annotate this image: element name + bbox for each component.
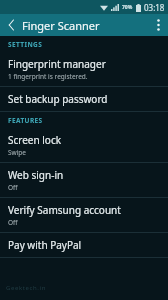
button[interactable]: Verify Samsung account [0,198,168,232]
button[interactable]: More options [148,14,168,36]
staticText: 03:18 [144,2,165,13]
staticText: Off [8,218,18,227]
button[interactable]: Fingerprint manager [0,52,168,86]
staticText: SETTINGS [8,40,43,49]
staticText: FEATURES [8,116,43,125]
button[interactable]: Back [0,14,22,36]
staticText: Off [8,183,18,192]
staticText: Web sign-in [8,168,64,182]
button[interactable]: Set backup password [0,87,168,111]
staticText: Finger Scanner [22,18,100,33]
staticText: 1 fingerprint is registered. [8,72,88,81]
staticText: Pay with PayPal [8,238,82,252]
staticText: Screen lock [8,133,62,147]
button[interactable]: Web sign-in [0,163,168,197]
button[interactable]: Screen lock [0,128,168,162]
staticText: 70% [122,4,133,11]
staticText: Set backup password [8,92,108,106]
button[interactable]: Pay with PayPal [0,233,168,257]
staticText: Geektech.in [6,284,46,292]
staticText: Verify Samsung account [8,203,121,217]
staticText: Swipe [8,148,27,157]
staticText: Fingerprint manager [8,57,106,71]
